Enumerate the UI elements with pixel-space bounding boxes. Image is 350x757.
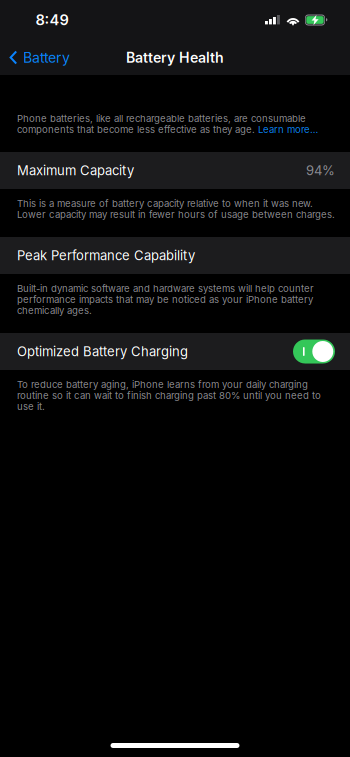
staticText: Battery	[23, 49, 70, 66]
staticText: chemically ages.	[17, 305, 92, 316]
button[interactable]: Maximum Capacity	[0, 152, 350, 189]
staticText: 94%	[306, 163, 335, 178]
staticText: To reduce battery aging, iPhone learns f…	[17, 379, 308, 390]
staticText: Phone batteries, like all rechargeable b…	[17, 113, 306, 124]
staticText: Learn more…	[258, 124, 318, 135]
button[interactable]: Learn more…	[258, 124, 318, 135]
staticText: Peak Performance Capability	[17, 248, 195, 263]
button[interactable]: Optimized Battery Charging	[0, 333, 350, 370]
staticText: use it.	[17, 401, 45, 412]
staticText: Battery Health	[126, 49, 224, 66]
staticText: Built-in dynamic software and hardware s…	[17, 283, 314, 294]
staticText: components that become less effective as…	[17, 124, 258, 135]
staticText: routine so it can wait to finish chargin…	[17, 390, 321, 401]
button[interactable]: Peak Performance Capability	[0, 237, 350, 274]
staticText: Maximum Capacity	[17, 163, 134, 178]
staticText: performance impacts that may be noticed …	[17, 294, 313, 305]
button[interactable]: Battery	[0, 40, 80, 75]
staticText: Optimized Battery Charging	[17, 344, 188, 359]
staticText: This is a measure of battery capacity re…	[17, 198, 313, 209]
staticText: 8:49	[35, 11, 68, 29]
staticText: Lower capacity may result in fewer hours…	[17, 209, 335, 220]
